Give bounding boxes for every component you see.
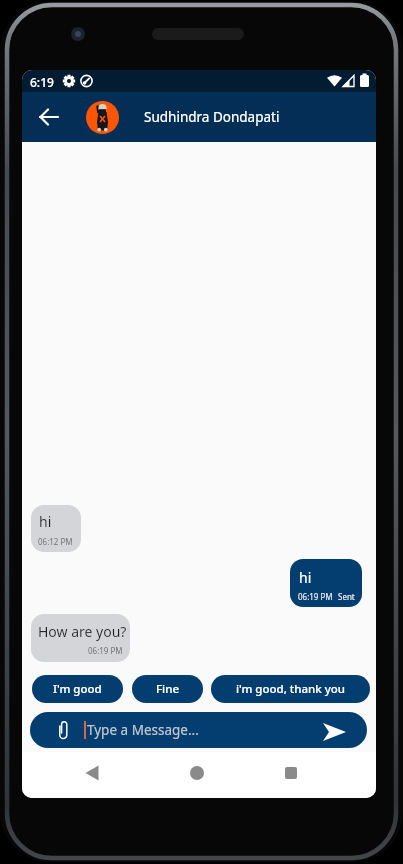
staticText: Sudhindra Dondapati [144,108,280,126]
staticText: 06:19 PM [88,645,123,656]
staticText: I'm good [53,681,102,697]
staticText: Type a Message... [87,721,199,739]
button[interactable]: Fine [132,675,203,703]
button[interactable]: I'm good [32,675,123,703]
staticText: 6:19 [30,74,54,90]
button[interactable]: Type a Message... [30,712,367,748]
button[interactable] [181,757,213,789]
staticText: 06:19 PM [298,591,333,602]
button[interactable] [275,757,307,789]
button[interactable] [50,712,78,748]
button[interactable] [314,712,356,748]
button[interactable] [76,757,108,789]
staticText: 06:12 PM [38,536,73,547]
button[interactable]: i'm good, thank you [211,675,370,703]
staticText: hi [39,512,52,531]
staticText: hi [299,568,312,587]
button[interactable] [22,92,76,142]
staticText: i'm good, thank you [236,681,345,697]
staticText: Fine [156,681,179,697]
staticText: How are you? [38,622,127,641]
staticText: Sent [338,591,355,602]
